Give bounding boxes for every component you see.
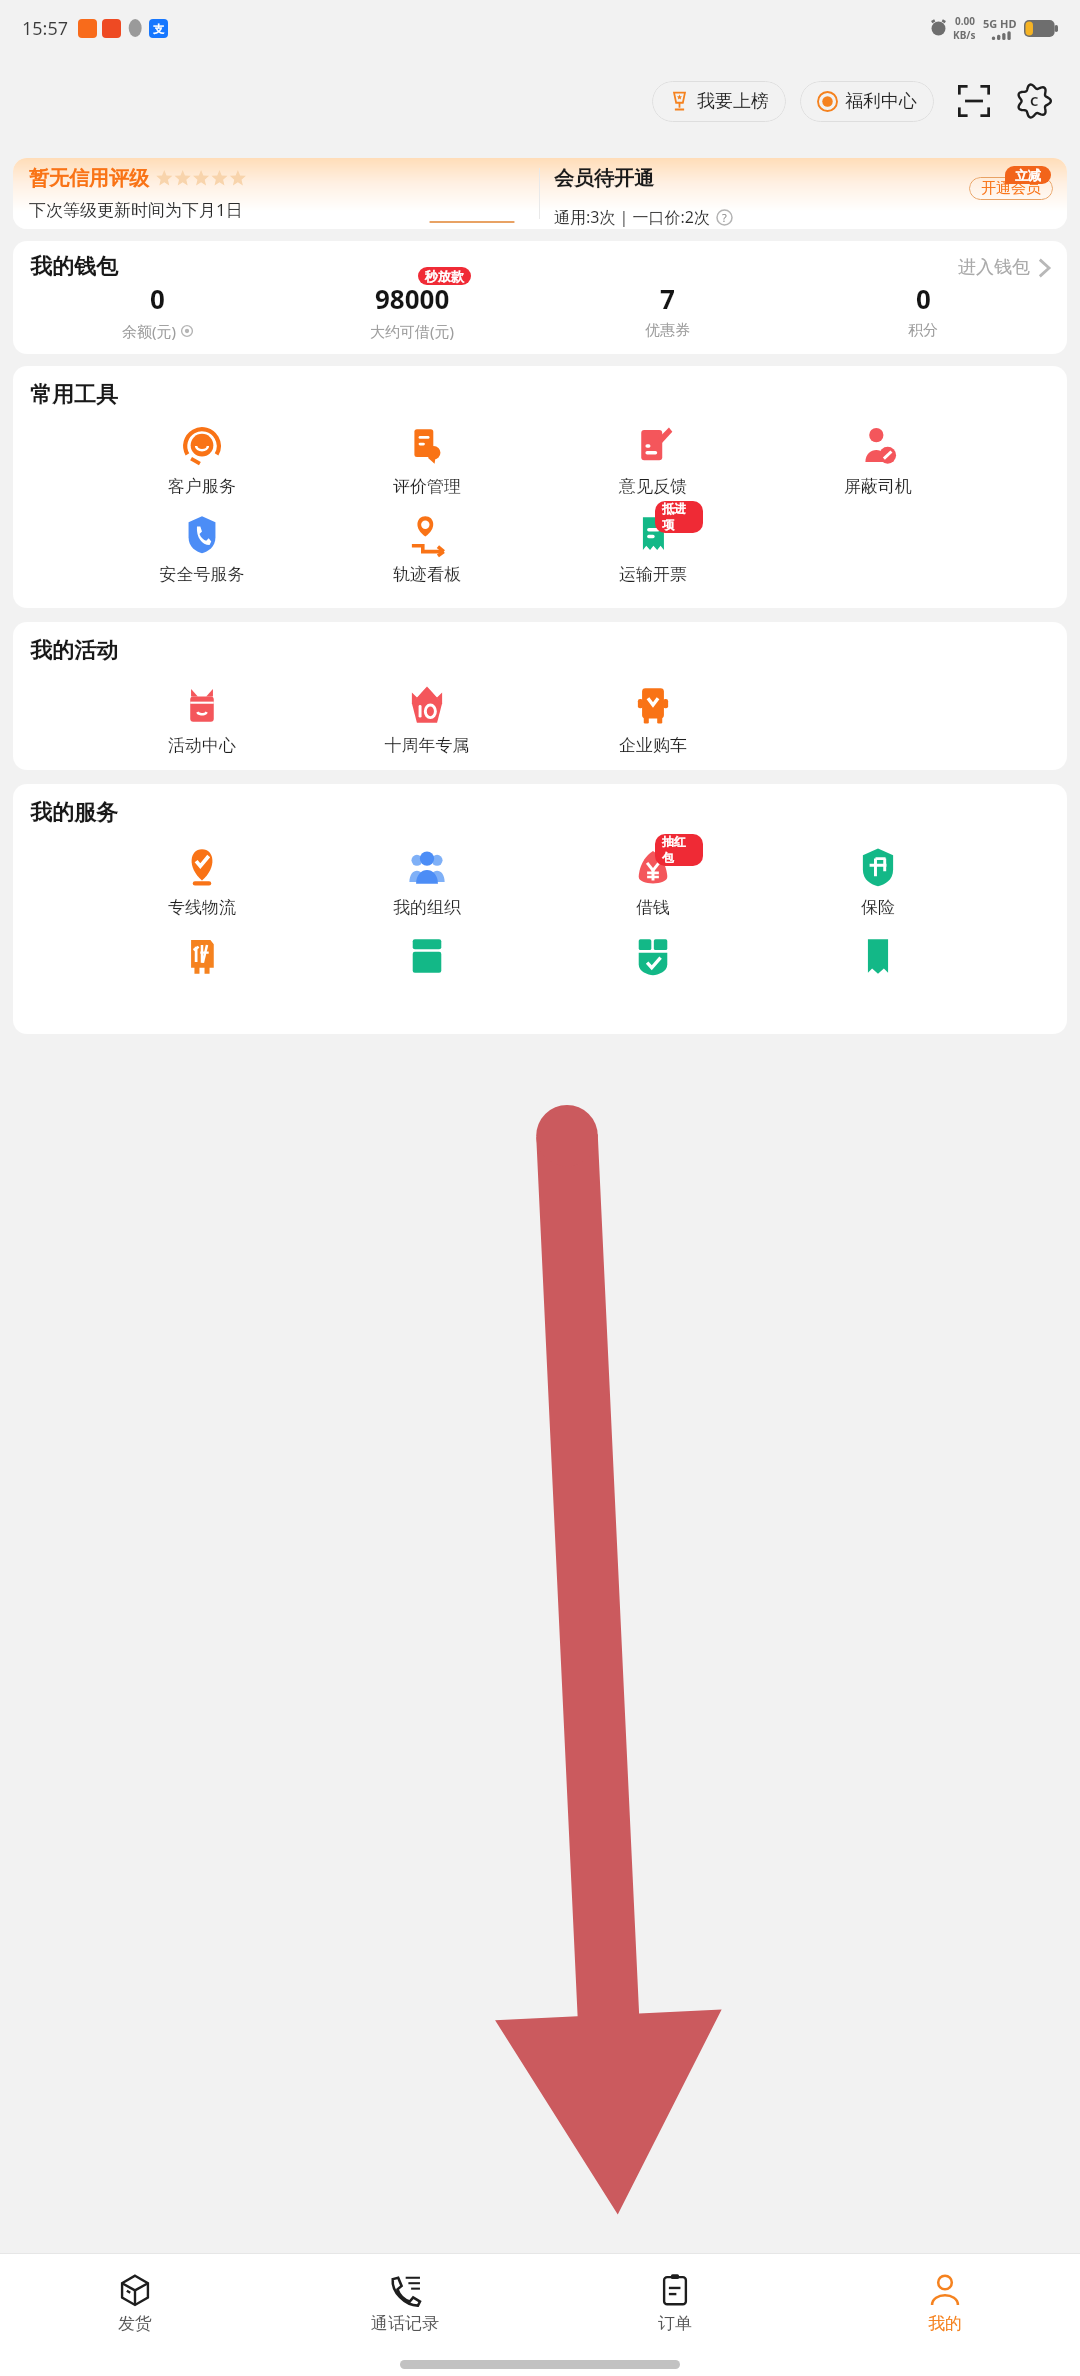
staticText: 我的钱包 [30, 253, 118, 281]
staticText: 轨迹看板 [384, 564, 470, 585]
staticText: 我的活动 [30, 637, 118, 665]
staticText: 意见反馈 [610, 476, 696, 497]
staticText: 常用工具 [30, 381, 118, 409]
button[interactable]: 客户服务 [159, 422, 245, 497]
staticText: 秒放款 [425, 268, 464, 284]
button[interactable]: 评价管理 [384, 422, 470, 497]
staticText: 5G HD [983, 16, 1017, 31]
button[interactable]: 查看权益 [429, 221, 515, 223]
button[interactable]: 抽红包 [610, 843, 696, 918]
button[interactable]: 服务 [610, 932, 696, 986]
staticText: 安全号服务 [159, 564, 245, 585]
button[interactable]: 我的组织 [384, 843, 470, 918]
button[interactable]: 服务 [835, 932, 921, 986]
staticText: 我要上榜 [697, 90, 769, 113]
button[interactable]: 企业购车 [610, 681, 696, 756]
staticText: 抵进项 [662, 501, 696, 533]
button[interactable]: 抵进项 [610, 510, 696, 585]
button[interactable]: 保险 [835, 843, 921, 918]
staticText: 我的服务 [30, 799, 118, 827]
staticText: 支 [153, 22, 164, 36]
staticText: 订单 [658, 2313, 692, 2334]
staticText: 专线物流 [159, 897, 245, 918]
button[interactable]: 服务 [384, 932, 470, 986]
button[interactable]: 专线物流 [159, 843, 245, 918]
button[interactable]: 我的 [810, 2254, 1080, 2352]
button[interactable]: 轨迹看板 [384, 510, 470, 585]
staticText: 0 [916, 281, 931, 316]
staticText: 抽红包 [662, 834, 696, 866]
button[interactable]: 福利中心 [800, 81, 934, 122]
staticText: 立减 [1015, 167, 1041, 183]
button[interactable]: 7 [540, 281, 795, 340]
staticText: 活动中心 [159, 735, 245, 756]
staticText: 保险 [835, 897, 921, 918]
staticText: 发货 [118, 2313, 152, 2334]
staticText: 我的 [928, 2313, 962, 2334]
staticText: 评价管理 [384, 476, 470, 497]
button[interactable]: 开通会员 [969, 177, 1053, 200]
staticText: 通用:3次 | 一口价:2次 [554, 206, 711, 228]
staticText: 0.00 [955, 14, 975, 28]
button[interactable]: 屏蔽司机 [835, 422, 921, 497]
button[interactable]: 意见反馈 [610, 422, 696, 497]
staticText: C [1030, 92, 1039, 110]
button[interactable]: 十周年专属 [384, 681, 470, 756]
staticText: 98000 [375, 281, 450, 316]
staticText: 暂无信用评级 [29, 166, 149, 191]
staticText: 通话记录 [371, 2313, 439, 2334]
button[interactable]: 订单 [540, 2254, 810, 2352]
button[interactable]: 服务 [159, 932, 245, 986]
button[interactable]: 扫一扫 [950, 77, 998, 125]
staticText: 优惠券 [645, 321, 690, 340]
button[interactable]: 通话记录 [270, 2254, 540, 2352]
button[interactable]: 设置 [1010, 77, 1058, 125]
staticText: 大约可借(元) [370, 321, 455, 341]
staticText: KB/s [953, 28, 976, 42]
staticText: 客户服务 [159, 476, 245, 497]
staticText: 0 [150, 281, 165, 316]
button[interactable]: 发货 [0, 2254, 270, 2352]
staticText: 屏蔽司机 [835, 476, 921, 497]
staticText: 积分 [908, 321, 938, 340]
staticText: ? [722, 210, 727, 225]
button[interactable]: 0 [795, 281, 1050, 340]
button[interactable]: 98000 [285, 281, 540, 341]
staticText: 15:57 [22, 16, 69, 41]
staticText: 开通会员 [981, 179, 1041, 198]
staticText: 7 [660, 281, 675, 316]
staticText: 借钱 [610, 897, 696, 918]
button[interactable]: 安全号服务 [159, 510, 245, 585]
staticText: 十周年专属 [384, 735, 470, 756]
staticText: 我的组织 [384, 897, 470, 918]
staticText: 下次等级更新时间为下月1日 [29, 198, 243, 221]
staticText: 运输开票 [610, 564, 696, 585]
staticText: 会员待开通 [554, 166, 654, 191]
button[interactable]: 我要上榜 [652, 81, 786, 122]
staticText: 福利中心 [845, 90, 917, 113]
staticText: 余额(元) [122, 321, 177, 341]
button[interactable]: 活动中心 [159, 681, 245, 756]
button[interactable]: 0 [30, 281, 285, 341]
button[interactable]: 进入钱包 [958, 256, 1050, 279]
staticText: 进入钱包 [958, 256, 1030, 279]
staticText: 企业购车 [610, 735, 696, 756]
